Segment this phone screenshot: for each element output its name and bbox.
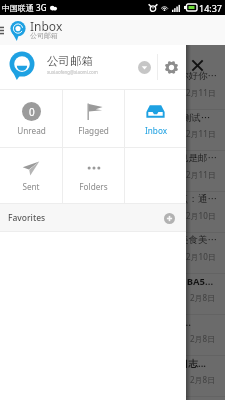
staticText: 2月8日: [190, 333, 216, 344]
button[interactable]: Settings: [158, 54, 184, 80]
staticText: Folders: [79, 181, 108, 192]
staticText: 2月8日: [190, 374, 216, 385]
button[interactable]: Favorites: [0, 204, 186, 231]
staticText: 中国联通 3G: [2, 2, 47, 13]
staticText: 邮件邮件邮件: [8, 166, 53, 175]
staticText: Unread: [17, 125, 46, 136]
staticText: 美食美食美食美食美食美食美食美食美食美食美食美食: [8, 234, 217, 246]
staticText: 2月10日: [186, 210, 216, 221]
staticText: Inbox: [30, 18, 63, 34]
staticText: 最新最新最新最新最新最新最新最新10 更...: [8, 316, 191, 329]
button[interactable]: Show accounts: [131, 54, 157, 80]
button[interactable]: Close: [188, 56, 206, 74]
staticText: 你好你好你好: [8, 84, 53, 93]
button[interactable]: Flagged: [63, 90, 124, 147]
staticText: 公司邮箱: [47, 54, 93, 68]
staticText: xuxiaofeng@xiaomi.com: [47, 69, 98, 75]
staticText: 通知通知通知: [8, 207, 53, 216]
staticText: 测试测试测试测试测试测试测试测试测试(测试日)2测试: [8, 111, 217, 124]
staticText: 2月11日: [186, 128, 216, 139]
staticText: 0: [29, 105, 35, 119]
staticText: Sent: [22, 181, 40, 192]
staticText: 你好你好你好你好你好你好你好你好你好你好你好你好: [8, 70, 217, 82]
staticText: Favorites: [8, 212, 46, 224]
staticText: Inbox: [145, 125, 167, 136]
button[interactable]: Inbox: [125, 90, 186, 147]
staticText: 2月8日: [190, 292, 216, 303]
staticText: 公司邮箱: [30, 31, 58, 40]
button[interactable]: 公司邮箱: [0, 45, 186, 89]
staticText: 测试测试测试: [8, 125, 53, 134]
staticText: 通知通知通知通知通知通知通知通知通知点：通知通知: [8, 193, 217, 205]
button[interactable]: Add favorite: [158, 207, 180, 229]
staticText: 2月11日: [186, 169, 216, 180]
staticText: 2月11日: [186, 87, 216, 98]
button[interactable]: Sent: [0, 148, 62, 203]
staticText: 工作工作工作工作工作工作工作工作工作日志...: [8, 357, 207, 370]
button[interactable]: 0: [0, 90, 62, 147]
button[interactable]: Folders: [63, 148, 124, 203]
staticText: 你好你好你好你好你好你好你好你好你好NBA5...: [8, 275, 214, 288]
staticText: 2月10日: [186, 251, 216, 262]
staticText: 邮件邮件邮件邮件邮件邮件邮件邮件邮件也是邮件邮件: [8, 152, 217, 164]
staticText: 14:37: [199, 2, 223, 14]
staticText: Flagged: [78, 125, 109, 136]
button[interactable]: Open navigation menu: [0, 15, 7, 45]
